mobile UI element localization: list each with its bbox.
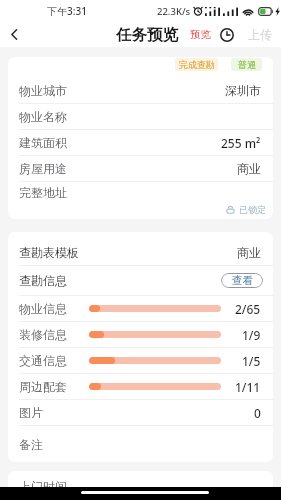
staticText: 完整地址 (19, 185, 67, 200)
staticText: 物业城市 (19, 83, 67, 98)
button[interactable]: Back (0, 22, 28, 47)
staticText: 预览 (190, 28, 211, 41)
staticText: 查看 (232, 274, 253, 287)
staticText: 任务预览 (116, 25, 178, 45)
staticText: 图片 (19, 405, 43, 420)
staticText: 深圳市 (225, 83, 261, 98)
staticText: 0 (254, 405, 261, 421)
staticText: 已锁定 (239, 204, 266, 215)
button[interactable]: 查看 (221, 273, 263, 288)
staticText: 交通信息 (19, 353, 67, 368)
staticText: 2/65 (235, 301, 261, 317)
staticText: 物业信息 (19, 301, 67, 316)
staticText: 完成查勘 (179, 59, 215, 70)
staticText: 查勘信息 (19, 273, 67, 288)
staticText: 普通 (238, 59, 256, 70)
staticText: 22.3K/s (157, 5, 191, 18)
staticText: 1/9 (242, 327, 261, 343)
staticText: 备注 (19, 437, 43, 452)
staticText: 下午3:31 (47, 4, 87, 18)
staticText: 上门时间 (19, 479, 67, 494)
staticText: 查勘表模板 (19, 245, 79, 260)
staticText: 房屋用途 (19, 161, 67, 176)
staticText: 周边配套 (19, 379, 67, 394)
staticText: 1/11 (235, 379, 261, 395)
button[interactable]: History (220, 28, 234, 42)
staticText: 255 m² (221, 135, 261, 151)
staticText: 物业名称 (19, 109, 67, 124)
staticText: 建筑面积 (19, 135, 67, 150)
staticText: 商业 (237, 161, 261, 176)
staticText: 装修信息 (19, 327, 67, 342)
button[interactable]: 上传 (247, 24, 273, 45)
staticText: 1/5 (242, 353, 261, 369)
button[interactable]: 预览 (189, 25, 212, 44)
staticText: 上传 (248, 27, 272, 42)
staticText: 商业 (237, 245, 261, 260)
